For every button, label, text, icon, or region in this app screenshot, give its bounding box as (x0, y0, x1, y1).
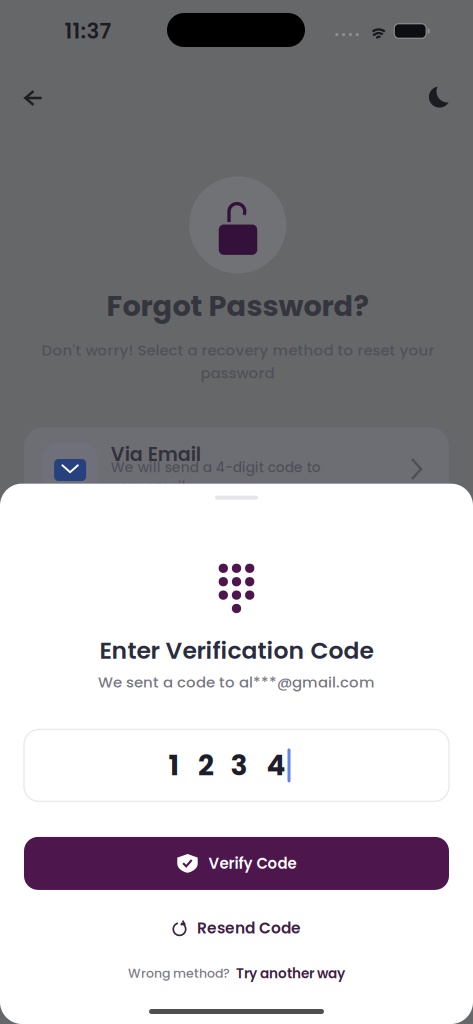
staticText: We sent a code to al***@gmail.com (98, 672, 375, 693)
button[interactable]: Dark mode (428, 86, 451, 108)
staticText: Verify Code (208, 853, 296, 874)
button[interactable]: Back (24, 90, 43, 106)
button[interactable]: Try another way (236, 964, 345, 983)
staticText: Via Email (111, 441, 201, 468)
staticText: 4 (266, 746, 285, 785)
staticText: 2 (198, 746, 214, 785)
staticText: 3 (230, 746, 247, 785)
staticText: Try another way (236, 964, 345, 983)
staticText: Wrong method? (128, 965, 230, 982)
staticText: 1 (168, 746, 179, 785)
button[interactable]: Verify Code (0, 837, 473, 890)
staticText: Forgot Password? (106, 286, 368, 326)
staticText: Resend Code (197, 917, 301, 939)
button[interactable]: Resend Code (172, 917, 301, 939)
staticText: Enter Verification Code (99, 634, 373, 667)
staticText: 11:37 (64, 16, 111, 46)
staticText: We will send a 4-digit code to your emai… (111, 458, 321, 496)
staticText: password (200, 363, 274, 383)
staticText: Don't worry! Select a recovery method to… (41, 340, 434, 361)
